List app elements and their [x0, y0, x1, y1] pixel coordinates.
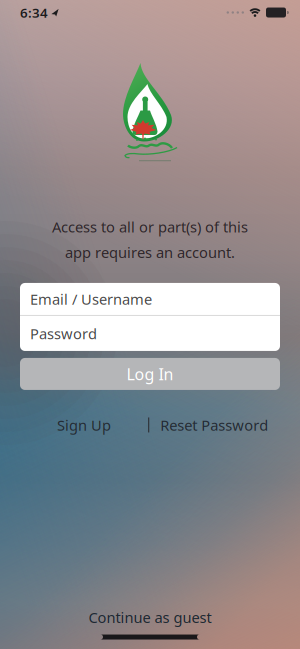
- staticText: Password: [30, 324, 97, 343]
- staticText: Access to all or part(s) of this: [52, 217, 248, 236]
- button[interactable]: Password: [20, 316, 280, 351]
- button[interactable]: Email / Username: [20, 283, 280, 315]
- staticText: Log In: [126, 363, 173, 384]
- staticText: Sign Up: [57, 415, 111, 435]
- button[interactable]: Sign Up: [57, 417, 119, 433]
- staticText: 6:34: [20, 4, 48, 21]
- button[interactable]: Continue as guest: [88, 607, 211, 627]
- staticText: Reset Password: [160, 415, 268, 435]
- staticText: Email / Username: [30, 289, 152, 309]
- button[interactable]: Reset Password: [160, 417, 275, 433]
- button[interactable]: Log In: [20, 358, 280, 390]
- staticText: Continue as guest: [88, 607, 211, 627]
- staticText: app requires an account.: [65, 242, 235, 262]
